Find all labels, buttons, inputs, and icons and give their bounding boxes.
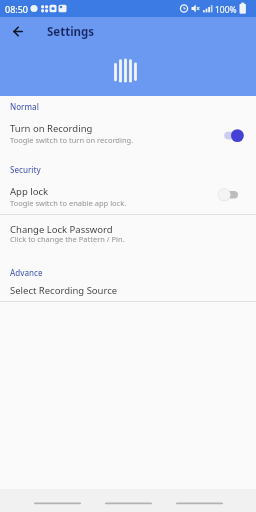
staticText: Select Recording Source	[10, 284, 118, 297]
button[interactable]	[5, 20, 29, 44]
button[interactable]: Turn on Recording	[0, 117, 256, 148]
staticText: Turn on Recording	[10, 122, 93, 135]
button[interactable]: Select Recording Source	[0, 283, 256, 301]
button[interactable]: Change Lock Password	[0, 219, 256, 249]
staticText: Normal	[10, 101, 39, 112]
button[interactable]: App lock	[0, 182, 256, 214]
staticText: Change Lock Password	[10, 223, 113, 236]
staticText: Toogle switch to enable app lock.	[10, 198, 127, 208]
staticText: 100%	[215, 4, 237, 16]
staticText: Security	[10, 164, 41, 175]
staticText: Toogle switch to turn on recording.	[10, 135, 134, 145]
staticText: 08:50	[5, 3, 29, 15]
staticText: Settings	[47, 24, 95, 40]
staticText: Click to change the Pattern / Pin.	[10, 234, 125, 244]
staticText: App lock	[10, 185, 49, 198]
staticText: Advance	[10, 267, 43, 278]
